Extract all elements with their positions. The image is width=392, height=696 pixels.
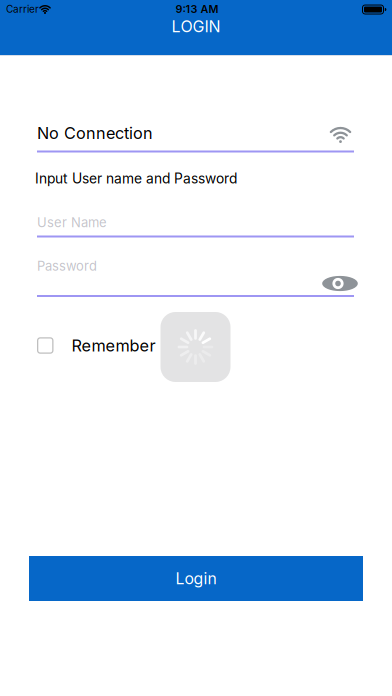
button[interactable]: Login	[29, 556, 363, 601]
staticText: 9:13 AM	[175, 2, 218, 16]
staticText: Login	[175, 569, 216, 588]
staticText: Remember	[71, 336, 155, 355]
button[interactable]: Show password	[322, 275, 358, 291]
staticText: Password	[37, 258, 97, 274]
staticText: LOGIN	[171, 17, 220, 36]
staticText: User Name	[37, 215, 107, 230]
staticText: No Connection	[37, 123, 153, 143]
staticText: Carrier	[6, 3, 39, 15]
textField[interactable]: User Name	[37, 215, 354, 230]
button[interactable]: Wi-Fi connection	[329, 126, 352, 143]
secureTextField[interactable]: Password	[37, 258, 354, 274]
staticText: Input User name and Password	[35, 170, 237, 187]
button[interactable]: Remember	[37, 336, 237, 355]
